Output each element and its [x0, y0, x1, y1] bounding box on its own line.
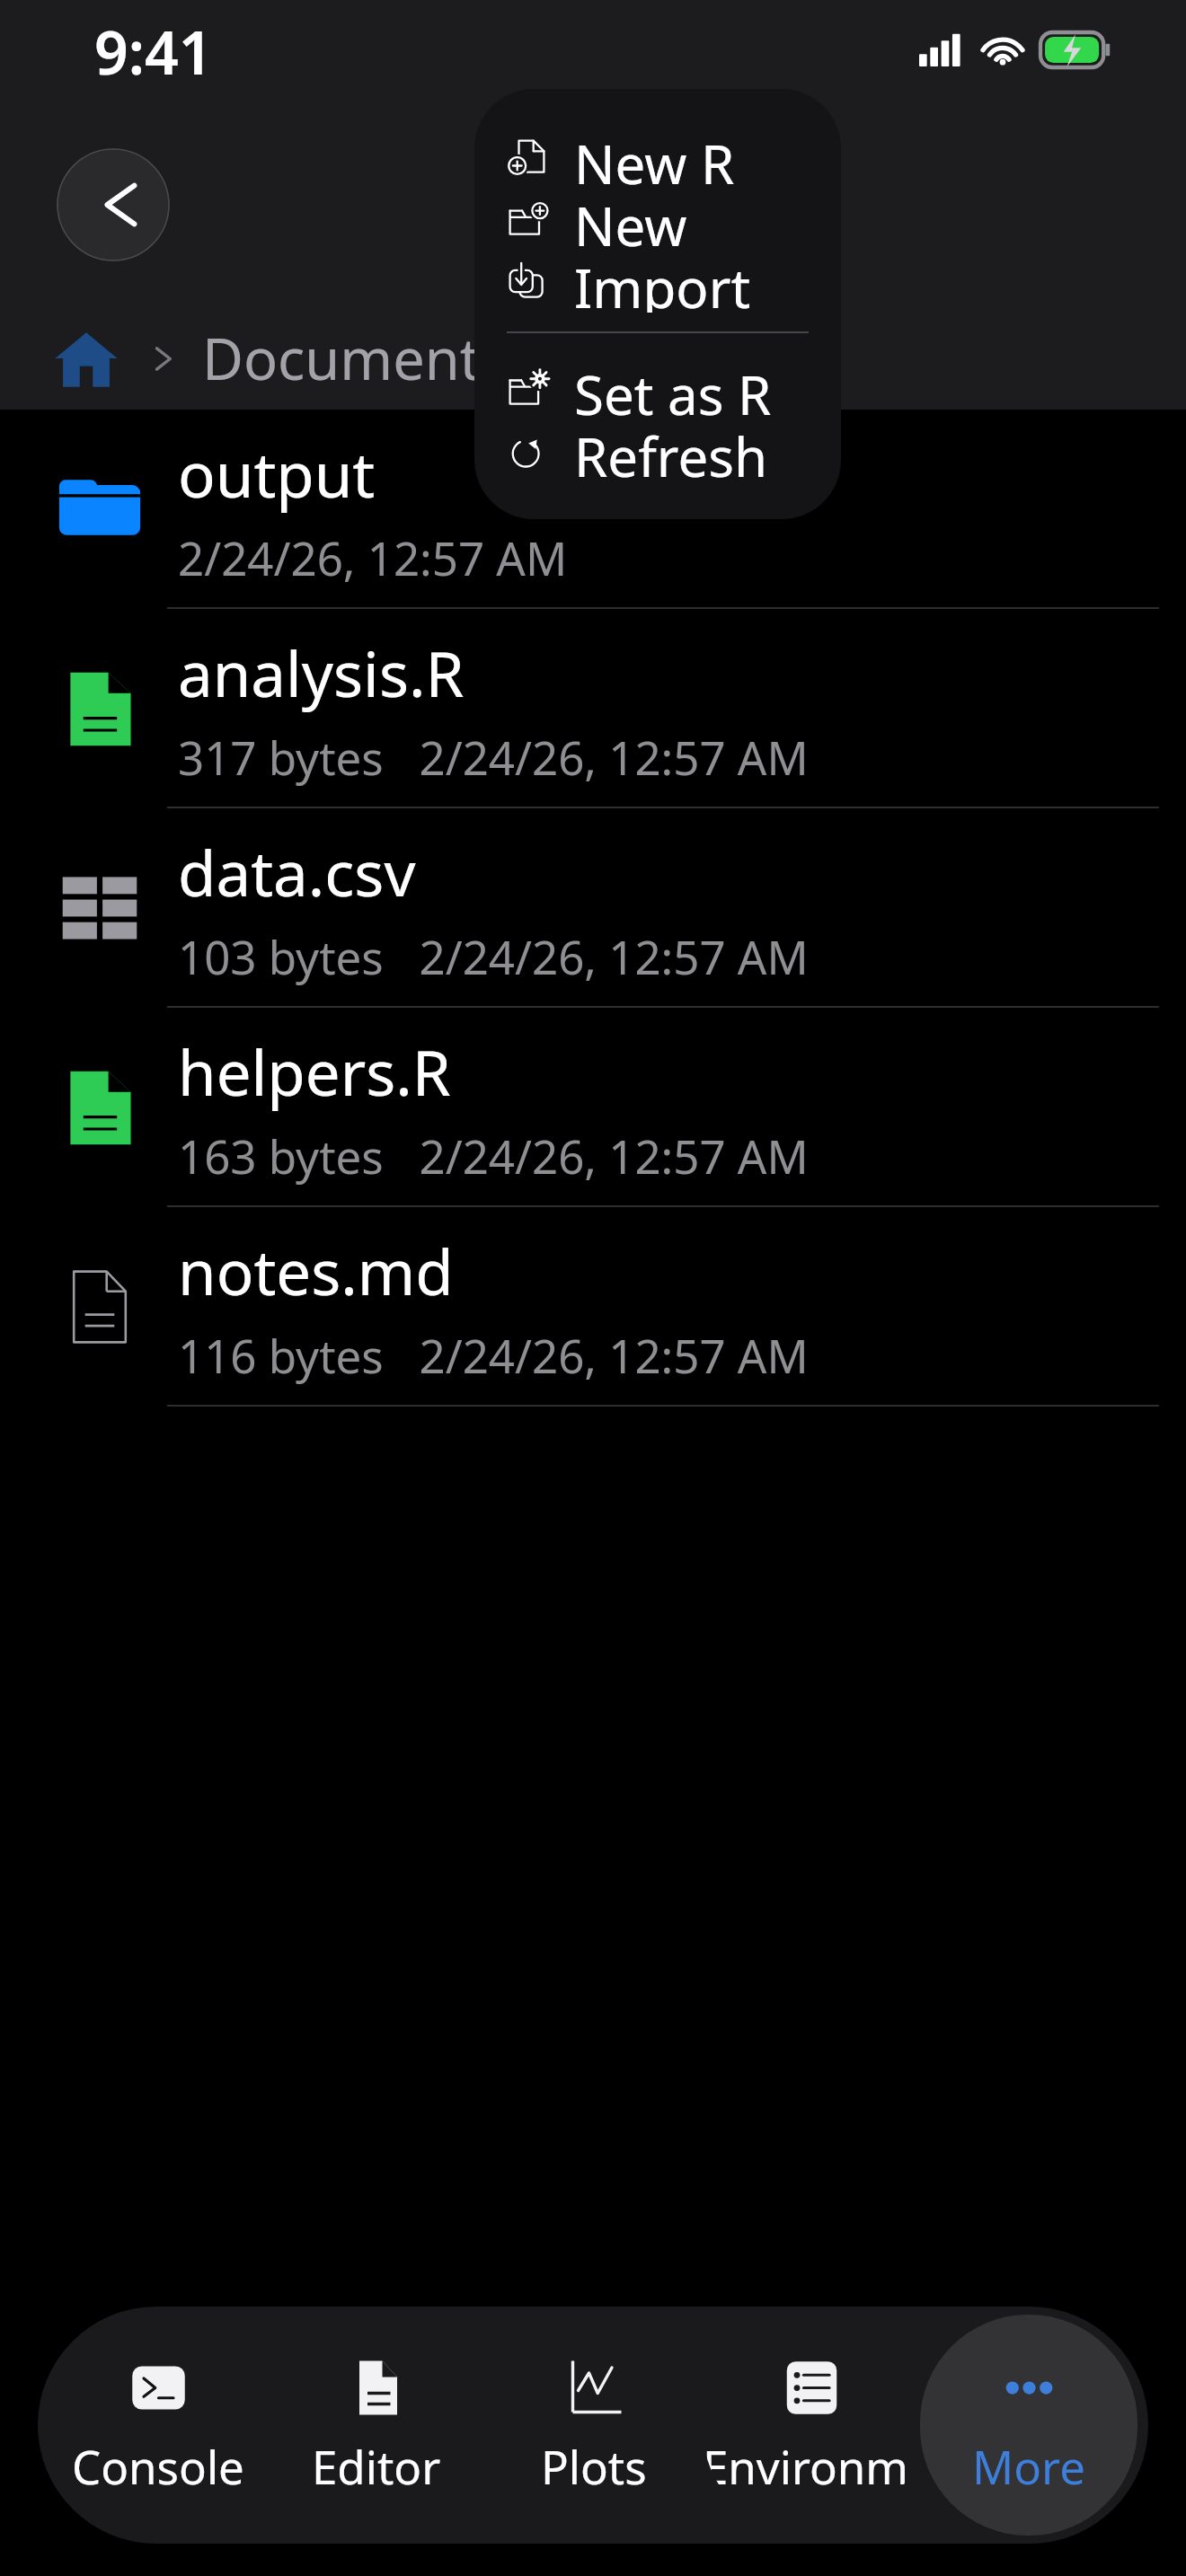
staticText: More	[972, 2435, 1085, 2497]
staticText: Plots	[541, 2435, 647, 2497]
staticText: data.csv	[178, 830, 416, 914]
staticText: 116 bytes 2/24/26, 12:57 AM	[178, 1324, 809, 1386]
button[interactable]: Plots	[485, 2315, 703, 2536]
button[interactable]: Back	[57, 148, 170, 261]
button[interactable]: New R Script	[474, 127, 841, 189]
button[interactable]: New Folder	[474, 189, 841, 251]
button[interactable]: Set as R Working Dir	[474, 357, 841, 419]
button[interactable]: analysis.R	[0, 609, 1186, 808]
staticText: 317 bytes 2/24/26, 12:57 AM	[178, 726, 809, 788]
button[interactable]: Console	[49, 2315, 267, 2536]
button[interactable]: Refresh	[474, 419, 841, 481]
button[interactable]: helpers.R	[0, 1008, 1186, 1207]
staticText: Set as R Working Dir	[574, 357, 841, 419]
staticText: Refresh	[574, 419, 768, 481]
staticText: New Folder	[574, 189, 841, 251]
staticText: 9:41	[94, 11, 213, 89]
staticText: analysis.R	[178, 631, 465, 715]
staticText: helpers.R	[178, 1029, 451, 1114]
button[interactable]: Import Data...	[474, 251, 841, 313]
staticText: Console	[72, 2435, 244, 2497]
button[interactable]: Documents	[202, 320, 508, 397]
staticText: output	[178, 431, 376, 516]
staticText: Import Data...	[574, 251, 841, 313]
button[interactable]: output	[0, 410, 1186, 609]
button[interactable]: data.csv	[0, 808, 1186, 1008]
staticText: Editor	[312, 2435, 441, 2497]
button[interactable]: Editor	[267, 2315, 485, 2536]
staticText: notes.md	[178, 1229, 454, 1313]
button[interactable]: Environment	[703, 2315, 920, 2536]
staticText: 103 bytes 2/24/26, 12:57 AM	[178, 925, 809, 987]
button[interactable]: Home	[49, 321, 124, 396]
staticText: New R Script	[574, 127, 841, 189]
button[interactable]: More	[920, 2315, 1137, 2536]
staticText: 163 bytes 2/24/26, 12:57 AM	[178, 1125, 809, 1187]
staticText: 2/24/26, 12:57 AM	[178, 526, 568, 588]
button[interactable]: Project	[586, 320, 771, 397]
button[interactable]: notes.md	[0, 1207, 1186, 1407]
staticText: Environment	[703, 2435, 920, 2497]
